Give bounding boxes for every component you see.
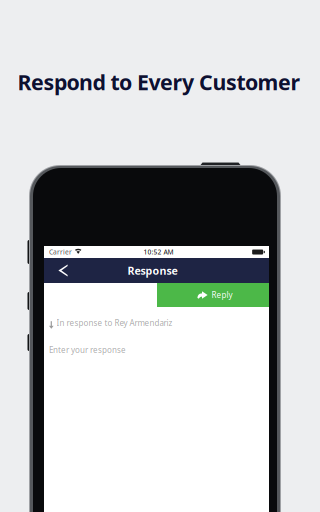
staticText: Enter your response bbox=[49, 345, 126, 355]
staticText: Respond to Every Customer bbox=[17, 68, 300, 96]
staticText: 10:52 AM bbox=[143, 248, 173, 256]
staticText: In response to Rey Armendariz bbox=[57, 318, 173, 328]
staticText: Reply bbox=[212, 290, 233, 300]
staticText: Carrier bbox=[49, 248, 72, 256]
button[interactable]: Back bbox=[48, 258, 78, 283]
button[interactable]: Enter your response bbox=[44, 339, 269, 361]
button[interactable]: Reply bbox=[157, 283, 269, 307]
staticText: Response bbox=[127, 263, 177, 278]
